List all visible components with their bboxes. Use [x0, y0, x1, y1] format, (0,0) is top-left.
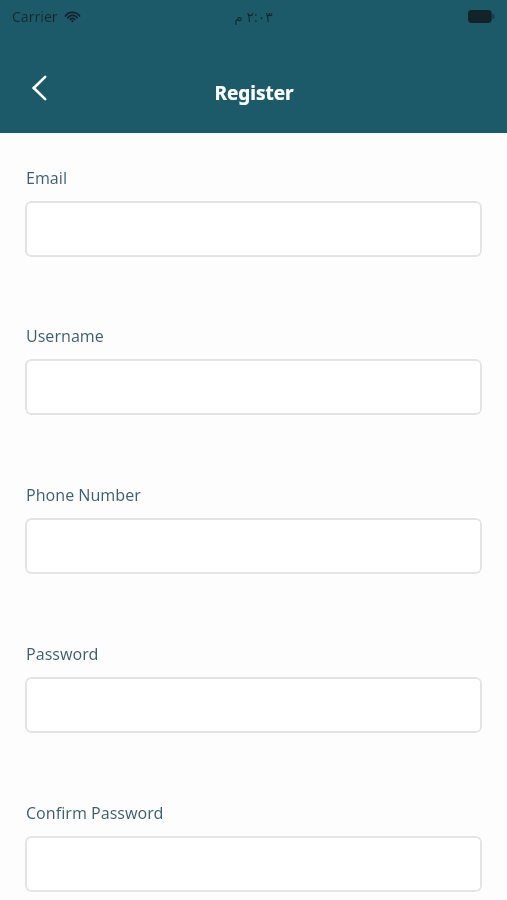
staticText: ٢:٠٣ م [234, 7, 273, 26]
staticText: Confirm Password [26, 802, 164, 824]
button[interactable]: Back [14, 62, 66, 114]
button[interactable]: Confirm Password [25, 836, 482, 892]
button[interactable]: Email [25, 201, 482, 257]
staticText: Username [26, 325, 104, 347]
button[interactable]: Username [25, 359, 482, 415]
button[interactable]: Password [25, 677, 482, 733]
staticText: Email [26, 167, 68, 189]
staticText: Register [214, 80, 294, 106]
staticText: Carrier [12, 7, 58, 26]
staticText: Password [26, 643, 99, 665]
button[interactable]: Phone Number [25, 518, 482, 574]
staticText: Phone Number [26, 484, 141, 506]
